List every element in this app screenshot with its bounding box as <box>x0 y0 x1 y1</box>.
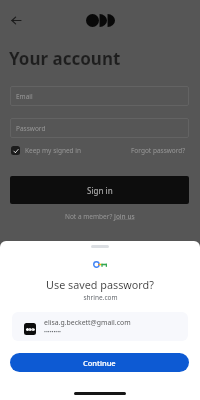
button[interactable]: Keep my signed in <box>11 145 81 155</box>
staticText: ••••••••• <box>44 329 61 336</box>
staticText: Sign in <box>87 185 113 196</box>
button[interactable]: elisa.g.beckett@gmail.com <box>12 312 188 341</box>
button[interactable]: Continue <box>10 353 189 372</box>
staticText: Not a member? <box>65 212 114 221</box>
staticText: Your account <box>9 47 121 70</box>
button[interactable]: Password <box>10 118 189 138</box>
staticText: shrine.com <box>83 293 118 302</box>
staticText: Use saved password? <box>46 277 154 292</box>
staticText: elisa.g.beckett@gmail.com <box>44 318 131 327</box>
staticText: Continue <box>83 358 116 368</box>
button[interactable]: Forgot password? <box>131 146 186 155</box>
staticText: Password <box>16 124 46 133</box>
button[interactable]: Back <box>6 10 26 30</box>
button[interactable]: Email <box>10 86 189 106</box>
button[interactable]: Join us <box>114 212 135 221</box>
button[interactable]: Sign in <box>10 176 189 204</box>
staticText: Keep my signed in <box>25 146 81 155</box>
staticText: Email <box>16 92 33 101</box>
